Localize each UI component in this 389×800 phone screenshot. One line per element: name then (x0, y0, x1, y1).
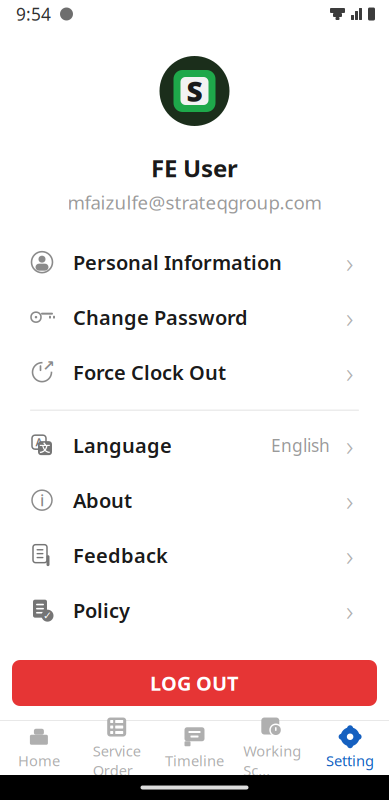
staticText: S (186, 72, 202, 110)
staticText: › (346, 482, 353, 519)
button[interactable]: Service Order (78, 721, 156, 775)
button[interactable]: Feedback (0, 528, 389, 583)
staticText: 文 (39, 442, 50, 455)
staticText: Working Sc... (243, 741, 301, 780)
staticText: About (73, 487, 132, 513)
staticText: Language (73, 432, 172, 458)
staticText: › (346, 592, 353, 629)
staticText: › (346, 354, 353, 391)
button[interactable]: LOG OUT (12, 660, 377, 706)
staticText: Setting (326, 751, 374, 770)
staticText: A (35, 435, 42, 449)
staticText: i (40, 489, 44, 511)
staticText: 9:54 (16, 2, 51, 25)
button[interactable]: i (0, 473, 389, 528)
staticText: › (346, 244, 353, 281)
staticText: Force Clock Out (73, 359, 226, 385)
button[interactable]: Working Sc... (233, 721, 311, 775)
staticText: Home (18, 751, 60, 770)
button[interactable]: Timeline (156, 721, 233, 775)
staticText: Personal Information (73, 249, 282, 275)
staticText: ↗ (42, 357, 54, 374)
staticText: Service Order (93, 741, 141, 780)
button[interactable]: ✓ (0, 583, 389, 638)
staticText: Feedback (73, 542, 168, 568)
staticText: Change Password (73, 304, 248, 330)
staticText: Timeline (165, 751, 224, 770)
staticText: ✓ (43, 610, 52, 622)
staticText: › (346, 427, 353, 464)
staticText: FE User (151, 152, 238, 184)
staticText: mfaizulfe@strateqgroup.com (67, 190, 321, 215)
button[interactable]: ↗ (0, 345, 389, 400)
staticText: LOG OUT (150, 670, 239, 696)
button[interactable]: Change Password (0, 290, 389, 345)
button[interactable]: Personal Information (0, 235, 389, 290)
staticText: Policy (73, 597, 130, 623)
staticText: › (346, 299, 353, 336)
button[interactable]: Setting (311, 721, 389, 775)
staticText: › (346, 537, 353, 574)
staticText: English (271, 434, 330, 457)
button[interactable]: Home (0, 721, 78, 775)
button[interactable]: A (0, 418, 389, 473)
